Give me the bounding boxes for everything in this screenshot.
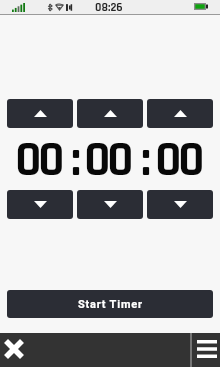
button[interactable]: Decrease: [7, 190, 73, 219]
button[interactable]: Increase: [147, 99, 213, 128]
button[interactable]: Menu: [192, 333, 220, 367]
button[interactable]: Increase: [7, 99, 73, 128]
staticText: 0: [155, 129, 182, 192]
staticText: 0: [178, 129, 205, 192]
button[interactable]: Close: [0, 333, 190, 367]
staticText: Start Timer: [78, 298, 143, 311]
staticText: 0: [15, 129, 42, 192]
button[interactable]: Increase: [77, 99, 143, 128]
button[interactable]: Start Timer: [7, 290, 213, 318]
staticText: :: [141, 129, 151, 192]
button[interactable]: Decrease: [77, 190, 143, 219]
staticText: :: [71, 129, 81, 192]
staticText: 0: [107, 129, 134, 192]
staticText: 0: [38, 129, 65, 192]
staticText: 08:26: [95, 0, 123, 14]
button[interactable]: Decrease: [147, 190, 213, 219]
staticText: 0: [84, 129, 111, 192]
